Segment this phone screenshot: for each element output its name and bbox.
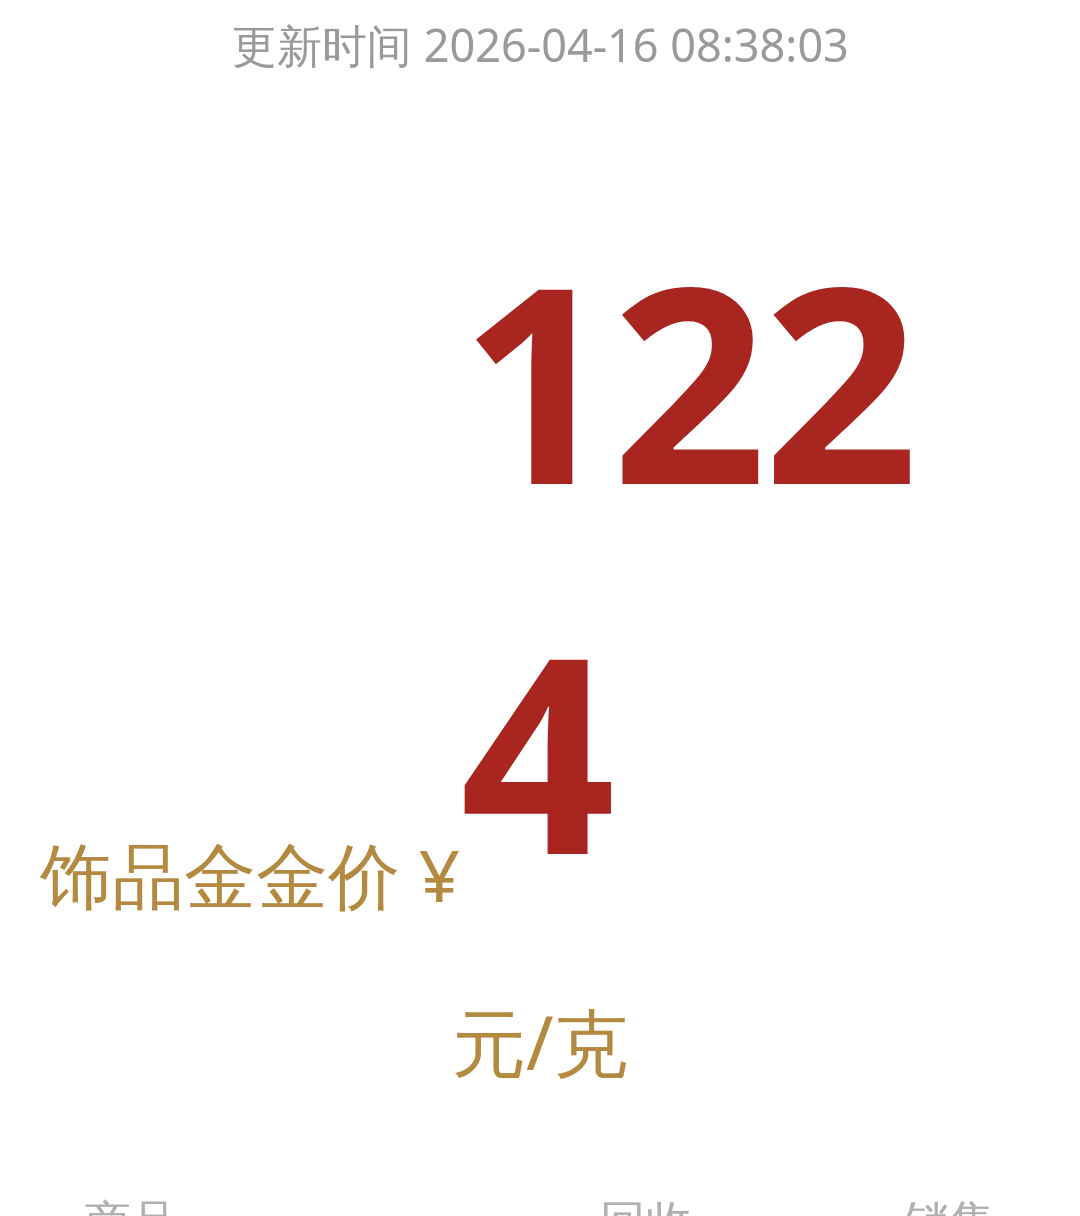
staticText: 销售 bbox=[692, 1194, 995, 1216]
staticText: 更新时间 2026-04-16 08:38:03 bbox=[232, 14, 849, 75]
staticText: 饰品金金价 ¥ bbox=[40, 825, 460, 923]
staticText: 1224 bbox=[460, 193, 1038, 933]
staticText: 元/克 bbox=[452, 991, 628, 1092]
button[interactable]: 更新时间 2026-04-16 08:38:03 bbox=[0, 14, 1080, 75]
staticText: 商品 bbox=[85, 1194, 389, 1216]
staticText: 回收 bbox=[389, 1194, 692, 1216]
